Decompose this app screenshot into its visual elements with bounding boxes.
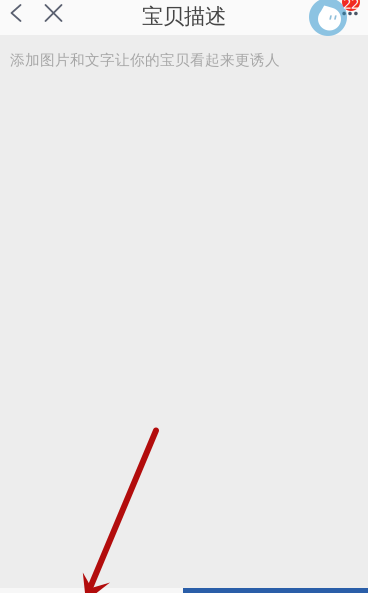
button[interactable]: More options — [340, 3, 360, 23]
button[interactable]: Close — [35, 0, 72, 28]
staticText: 宝贝描述 — [142, 3, 226, 30]
button[interactable]: Customer service — [309, 0, 347, 36]
staticText: 22 — [343, 0, 359, 13]
staticText: 添加图片和文字让你的宝贝看起来更诱人 — [10, 51, 280, 69]
button[interactable]: Back — [0, 0, 32, 28]
